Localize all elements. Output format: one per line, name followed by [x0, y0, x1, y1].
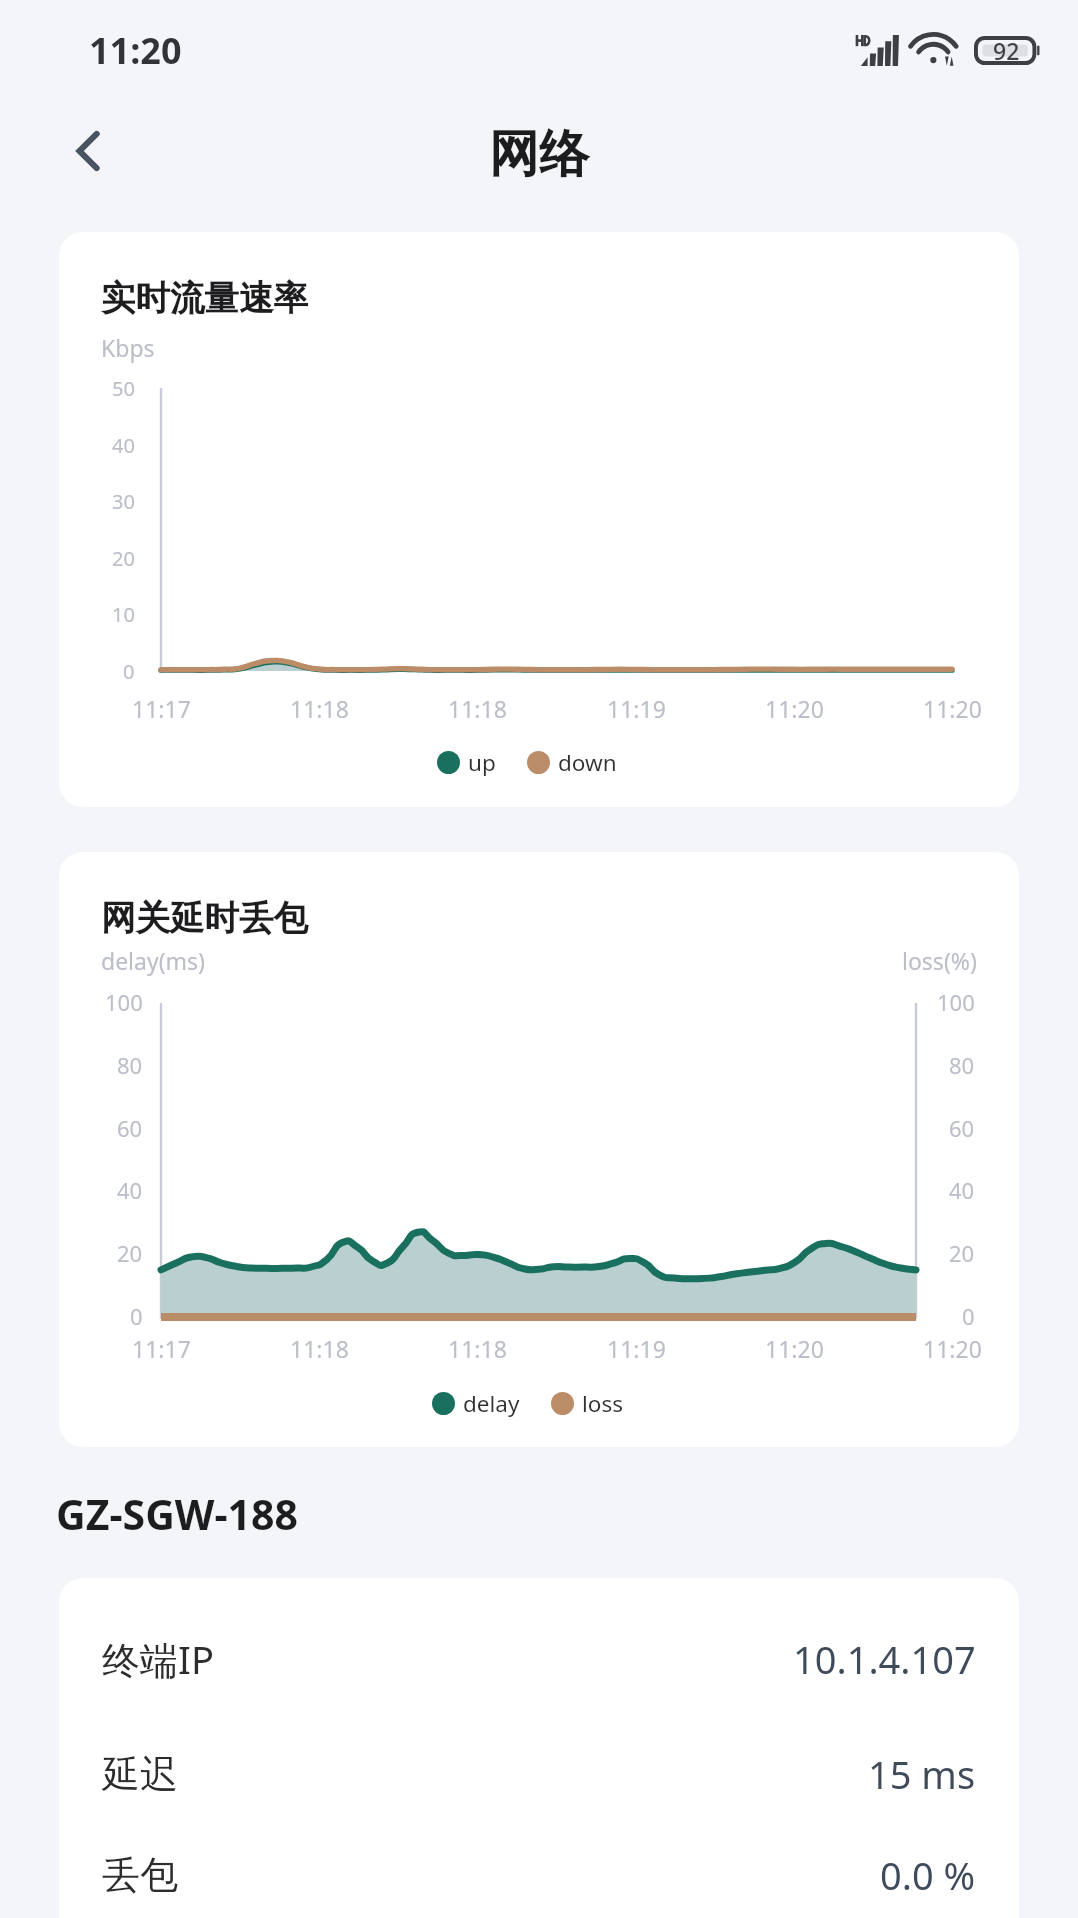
staticText: up	[468, 747, 496, 778]
staticText: 实时流量速率	[101, 277, 308, 320]
staticText: 20	[117, 1238, 143, 1268]
staticText: 丢包	[102, 1851, 178, 1899]
staticText: 30	[112, 488, 135, 515]
staticText: 0.0 %	[880, 1849, 976, 1901]
staticText: GZ-SGW-188	[56, 1486, 298, 1542]
staticText: 11:18	[448, 693, 507, 724]
staticText: 100	[937, 987, 975, 1017]
staticText: down	[558, 747, 617, 778]
staticText: loss(%)	[902, 945, 977, 976]
staticText: 50	[112, 375, 135, 402]
staticText: 100	[105, 987, 143, 1017]
button[interactable]: 丢包	[59, 1831, 1019, 1918]
staticText: loss	[582, 1388, 623, 1419]
staticText: 11:20	[923, 693, 982, 724]
staticText: 11:19	[607, 1333, 666, 1364]
staticText: 11:17	[132, 693, 191, 724]
staticText: 11:19	[607, 693, 666, 724]
staticText: 11:18	[290, 1333, 349, 1364]
staticText: 40	[112, 432, 135, 459]
staticText: 80	[949, 1050, 975, 1080]
staticText: 11:20	[89, 26, 182, 75]
staticText: 92	[993, 35, 1020, 66]
staticText: 11:20	[923, 1333, 982, 1364]
staticText: 60	[949, 1113, 975, 1143]
staticText: 网络	[489, 123, 589, 186]
staticText: 0	[962, 1301, 975, 1331]
button[interactable]: Back	[44, 109, 134, 199]
staticText: 0	[130, 1301, 143, 1331]
staticText: Kbps	[101, 332, 155, 363]
staticText: 40	[117, 1175, 143, 1205]
staticText: 0	[123, 658, 135, 685]
staticText: 20	[112, 545, 135, 572]
staticText: delay(ms)	[101, 945, 206, 976]
staticText: 11:18	[448, 1333, 507, 1364]
button[interactable]: 延迟	[59, 1716, 1019, 1831]
button[interactable]: 网关延时丢包	[59, 852, 1019, 1447]
staticText: 60	[117, 1113, 143, 1143]
button[interactable]: 终端IP	[59, 1601, 1019, 1716]
staticText: 11:20	[765, 1333, 824, 1364]
staticText: 80	[117, 1050, 143, 1080]
staticText: 20	[949, 1238, 975, 1268]
staticText: 15 ms	[868, 1748, 976, 1800]
button[interactable]: 实时流量速率	[59, 232, 1019, 807]
staticText: 11:17	[132, 1333, 191, 1364]
staticText: 11:18	[290, 693, 349, 724]
staticText: delay	[463, 1388, 520, 1419]
staticText: 40	[949, 1175, 975, 1205]
staticText: 10	[112, 601, 135, 628]
staticText: 终端IP	[102, 1633, 214, 1685]
staticText: 11:20	[765, 693, 824, 724]
staticText: 延迟	[102, 1750, 178, 1798]
staticText: 10.1.4.107	[793, 1633, 976, 1685]
staticText: 网关延时丢包	[101, 897, 308, 940]
